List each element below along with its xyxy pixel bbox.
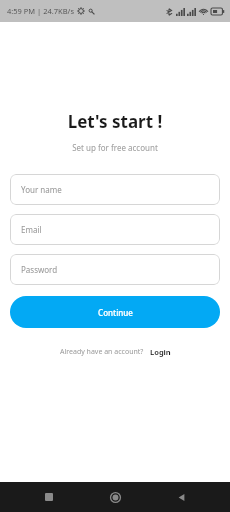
staticText: Already have an account?: [60, 347, 144, 357]
staticText: Password: [21, 264, 58, 275]
button[interactable]: Your name: [10, 174, 220, 205]
button[interactable]: Recent apps: [36, 484, 62, 510]
button[interactable]: Home: [102, 484, 128, 510]
button[interactable]: Continue: [10, 296, 220, 328]
button[interactable]: Login: [150, 347, 171, 357]
staticText: Your name: [21, 184, 62, 195]
button[interactable]: Email: [10, 214, 220, 245]
button[interactable]: Password: [10, 254, 220, 285]
staticText: Email: [21, 224, 42, 235]
staticText: Continue: [98, 307, 133, 318]
staticText: Let's start !: [0, 110, 230, 133]
staticText: Set up for free account: [0, 142, 230, 153]
staticText: Login: [150, 347, 171, 357]
button[interactable]: Back: [168, 484, 194, 510]
staticText: 4:59 PM | 24.7KB/s: [7, 6, 74, 16]
